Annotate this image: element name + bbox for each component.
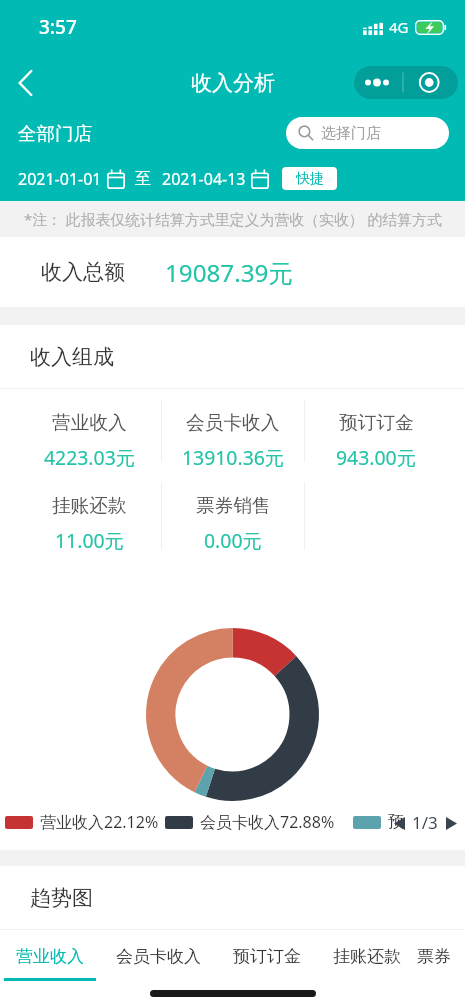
button[interactable]: 挂账还款 <box>317 930 417 984</box>
staticText: 19087.39元 <box>165 256 293 289</box>
staticText: 收入组成 <box>30 344 114 370</box>
staticText: 11.00元 <box>55 527 124 553</box>
staticText: 会员卡收入72.88% <box>200 811 335 833</box>
button[interactable]: 预 <box>353 812 404 832</box>
staticText: 预 <box>388 812 404 832</box>
staticText: 预订订金 <box>339 411 414 435</box>
button[interactable]: Back <box>5 63 45 103</box>
staticText: 选择门店 <box>321 124 381 143</box>
button[interactable]: 选择门店 <box>286 117 449 149</box>
button[interactable]: 营业收入 <box>18 389 161 472</box>
staticText: 挂账还款 <box>333 946 401 967</box>
staticText: 趋势图 <box>30 885 93 911</box>
staticText: 4223.03元 <box>44 444 136 470</box>
staticText: 13910.36元 <box>182 444 285 470</box>
button[interactable]: 挂账还款 <box>18 472 161 560</box>
button[interactable]: 快捷 <box>282 167 337 190</box>
button[interactable]: 营业收入 <box>0 930 100 984</box>
staticText: 2021-01-01 <box>18 168 102 190</box>
button[interactable]: 营业收入22.12% <box>5 811 159 833</box>
staticText: 4G <box>389 17 409 37</box>
staticText: 营业收入22.12% <box>40 811 159 833</box>
staticText: 2021-04-13 <box>162 168 246 190</box>
button[interactable]: 票券销售 <box>417 930 465 984</box>
staticText: 预订订金 <box>233 946 301 967</box>
staticText: 3:57 <box>39 14 77 40</box>
button[interactable]: 票券销售 <box>162 472 304 560</box>
button[interactable]: More options <box>354 66 458 99</box>
button[interactable]: 会员卡收入72.88% <box>165 811 335 833</box>
button[interactable]: Previous page <box>391 812 407 834</box>
staticText: 943.00元 <box>336 444 417 470</box>
button[interactable]: 预订订金 <box>217 930 317 984</box>
staticText: 收入分析 <box>191 70 275 96</box>
staticText: 营业收入 <box>52 411 127 435</box>
staticText: 挂账还款 <box>52 494 127 518</box>
button[interactable]: 会员卡收入 <box>162 389 304 472</box>
staticText: 收入总额 <box>41 259 125 285</box>
staticText: 0.00元 <box>204 527 262 553</box>
staticText: 营业收入 <box>16 946 84 967</box>
staticText: 会员卡收入 <box>116 946 201 967</box>
staticText: *注： 此报表仅统计结算方式里定义为营收（实收） 的结算方式 <box>24 209 442 229</box>
staticText: 1/3 <box>412 811 438 834</box>
staticText: 至 <box>135 169 151 189</box>
button[interactable]: 预订订金 <box>305 389 447 472</box>
staticText: 票券销售 <box>196 494 271 518</box>
button[interactable]: 全部门店 <box>18 122 92 145</box>
button[interactable]: 2021-04-13 <box>162 168 269 190</box>
staticText: 票券销售 <box>417 946 465 967</box>
button[interactable]: Next page <box>443 812 459 834</box>
button[interactable]: 2021-01-01 <box>18 168 125 190</box>
staticText: 会员卡收入 <box>186 411 280 435</box>
staticText: 快捷 <box>296 170 324 188</box>
button[interactable]: 会员卡收入 <box>100 930 217 984</box>
